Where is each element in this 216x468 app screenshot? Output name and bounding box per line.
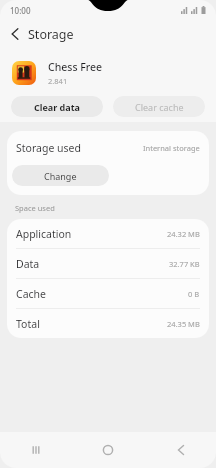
staticText: 10:00 bbox=[10, 5, 31, 16]
staticText: Data bbox=[16, 257, 40, 271]
button[interactable]: Clear data bbox=[11, 96, 103, 117]
staticText: Storage bbox=[28, 26, 74, 43]
staticText: 0 B bbox=[188, 289, 200, 299]
button[interactable]: Clear cache bbox=[113, 96, 205, 117]
staticText: Space used bbox=[15, 203, 55, 213]
staticText: 32.77 KB bbox=[169, 259, 200, 269]
staticText: Chess Free bbox=[48, 60, 103, 74]
button[interactable]: Home bbox=[72, 432, 144, 468]
staticText: Application bbox=[16, 227, 72, 241]
staticText: 24.32 MB bbox=[167, 229, 200, 239]
button[interactable]: Data bbox=[7, 249, 209, 278]
staticText: Change bbox=[44, 170, 77, 182]
staticText: Clear cache bbox=[135, 101, 184, 113]
staticText: Total bbox=[16, 317, 40, 331]
button[interactable]: Back bbox=[144, 432, 216, 468]
staticText: Storage used bbox=[16, 141, 81, 155]
button[interactable]: Back bbox=[0, 20, 28, 48]
button[interactable]: Cache bbox=[7, 279, 209, 308]
staticText: Clear data bbox=[34, 101, 80, 113]
button[interactable]: Total bbox=[7, 309, 209, 338]
button[interactable]: Recent apps bbox=[0, 432, 72, 468]
staticText: Internal storage bbox=[143, 143, 200, 153]
button[interactable]: Change bbox=[12, 165, 109, 186]
staticText: 24.35 MB bbox=[167, 319, 200, 329]
staticText: 2.841 bbox=[48, 76, 68, 86]
staticText: Cache bbox=[16, 287, 46, 301]
button[interactable]: Application bbox=[7, 219, 209, 248]
